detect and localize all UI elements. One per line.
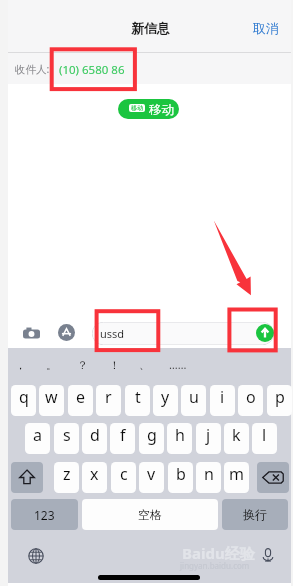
button[interactable]: 空格	[82, 499, 218, 530]
staticText: 取消	[253, 20, 279, 36]
staticText: 123	[34, 507, 55, 523]
button[interactable]: u	[181, 385, 206, 416]
staticText: 空格	[138, 507, 162, 522]
button[interactable]: 123	[11, 499, 78, 530]
button[interactable]: n	[196, 462, 221, 493]
button[interactable]: Dictation	[260, 547, 276, 563]
staticText: 移动	[149, 102, 174, 118]
staticText: i	[220, 386, 225, 408]
staticText: w	[45, 386, 58, 408]
staticText: t	[135, 386, 141, 408]
staticText: q	[19, 386, 29, 408]
button[interactable]: o	[238, 385, 263, 416]
staticText: 新信息	[131, 20, 170, 36]
staticText: a	[33, 424, 42, 446]
button[interactable]: a	[25, 423, 50, 454]
staticText: j	[206, 424, 211, 446]
staticText: f	[120, 424, 126, 446]
staticText: Baidu经验	[182, 543, 255, 563]
button[interactable]: j	[196, 423, 221, 454]
staticText: ……	[169, 357, 187, 372]
button[interactable]: ussd	[92, 322, 274, 345]
staticText: 、	[139, 358, 150, 372]
button[interactable]: Shift	[11, 462, 43, 493]
button[interactable]: 移动	[118, 99, 179, 119]
button[interactable]: ，	[6, 356, 34, 373]
button[interactable]: 取消	[246, 14, 286, 42]
staticText: k	[232, 424, 241, 446]
staticText: ussd	[100, 326, 125, 341]
button[interactable]: ……	[164, 356, 192, 373]
button[interactable]: k	[224, 423, 249, 454]
button[interactable]: Camera	[23, 325, 40, 342]
staticText: v	[147, 463, 156, 485]
button[interactable]: ！	[100, 356, 128, 373]
button[interactable]: c	[111, 462, 136, 493]
staticText: r	[105, 386, 112, 408]
button[interactable]: Send	[256, 324, 274, 342]
button[interactable]: d	[82, 423, 107, 454]
button[interactable]: 。	[37, 356, 65, 373]
staticText: n	[204, 463, 214, 485]
staticText: c	[120, 463, 128, 485]
button[interactable]: y	[153, 385, 178, 416]
staticText: z	[63, 463, 71, 485]
button[interactable]: t	[125, 385, 150, 416]
staticText: (10) 6580 86	[59, 62, 125, 78]
button[interactable]: Switch keyboard	[28, 548, 44, 564]
staticText: u	[189, 386, 199, 408]
staticText: l	[262, 424, 267, 446]
button[interactable]: s	[54, 423, 79, 454]
button[interactable]: e	[68, 385, 93, 416]
staticText: s	[63, 424, 71, 446]
button[interactable]: v	[139, 462, 164, 493]
button[interactable]: w	[39, 385, 64, 416]
button[interactable]: f	[110, 423, 135, 454]
staticText: e	[76, 386, 86, 408]
button[interactable]: x	[82, 462, 107, 493]
button[interactable]: g	[139, 423, 164, 454]
button[interactable]: 换行	[222, 499, 288, 530]
staticText: ，	[15, 358, 26, 372]
staticText: g	[147, 424, 157, 446]
button[interactable]: Backspace	[257, 462, 289, 493]
staticText: 收件人:	[15, 62, 50, 76]
button[interactable]: q	[11, 385, 36, 416]
staticText: ！	[109, 358, 120, 372]
button[interactable]: 、	[130, 356, 158, 373]
staticText: o	[246, 386, 256, 408]
button[interactable]: ？	[68, 356, 96, 373]
staticText: 移动	[131, 104, 143, 112]
button[interactable]: i	[210, 385, 235, 416]
staticText: m	[229, 463, 244, 485]
button[interactable]: r	[96, 385, 121, 416]
staticText: p	[275, 386, 285, 408]
button[interactable]: h	[167, 423, 192, 454]
button[interactable]: z	[54, 462, 79, 493]
staticText: 换行	[243, 507, 267, 522]
button[interactable]: b	[168, 462, 193, 493]
staticText: jingyan.baidu.com	[180, 560, 250, 571]
staticText: d	[90, 424, 100, 446]
staticText: x	[90, 463, 99, 485]
button[interactable]: Apps	[58, 324, 75, 341]
button[interactable]: p	[267, 385, 292, 416]
staticText: ？	[77, 358, 88, 372]
button[interactable]: l	[252, 423, 277, 454]
staticText: 。	[46, 358, 57, 372]
button[interactable]: m	[224, 462, 249, 493]
staticText: b	[176, 463, 186, 485]
staticText: y	[161, 386, 170, 408]
staticText: h	[175, 424, 185, 446]
